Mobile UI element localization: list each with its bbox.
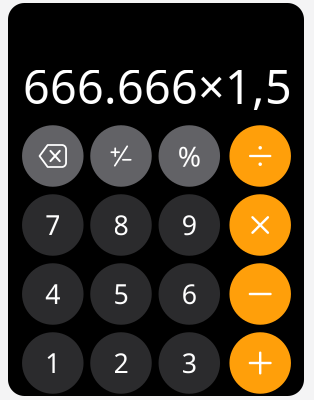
- staticText: 9: [182, 207, 197, 243]
- button[interactable]: 2: [90, 332, 152, 394]
- button[interactable]: Minus: [229, 263, 291, 325]
- staticText: 1: [45, 345, 60, 381]
- staticText: 7: [45, 207, 60, 243]
- staticText: 5: [113, 276, 128, 312]
- staticText: 4: [45, 276, 60, 312]
- button[interactable]: Plus: [229, 332, 291, 394]
- button[interactable]: 9: [159, 194, 220, 256]
- button[interactable]: 8: [90, 194, 152, 256]
- button[interactable]: 4: [22, 263, 83, 325]
- button[interactable]: 6: [159, 263, 220, 325]
- button[interactable]: Divide: [229, 125, 291, 187]
- button[interactable]: 1: [22, 332, 83, 394]
- button[interactable]: 3: [159, 332, 220, 394]
- staticText: 3: [182, 345, 197, 381]
- staticText: 666.666×1,5: [23, 55, 292, 117]
- button[interactable]: Plus minus: [90, 125, 152, 187]
- staticText: 6: [182, 276, 197, 312]
- button[interactable]: Delete: [22, 125, 83, 187]
- button[interactable]: Percent: [159, 125, 220, 187]
- button[interactable]: Multiply: [229, 194, 291, 256]
- staticText: %: [178, 137, 201, 175]
- button[interactable]: 5: [90, 263, 152, 325]
- staticText: 8: [113, 207, 128, 243]
- staticText: 2: [113, 345, 128, 381]
- button[interactable]: 7: [22, 194, 83, 256]
